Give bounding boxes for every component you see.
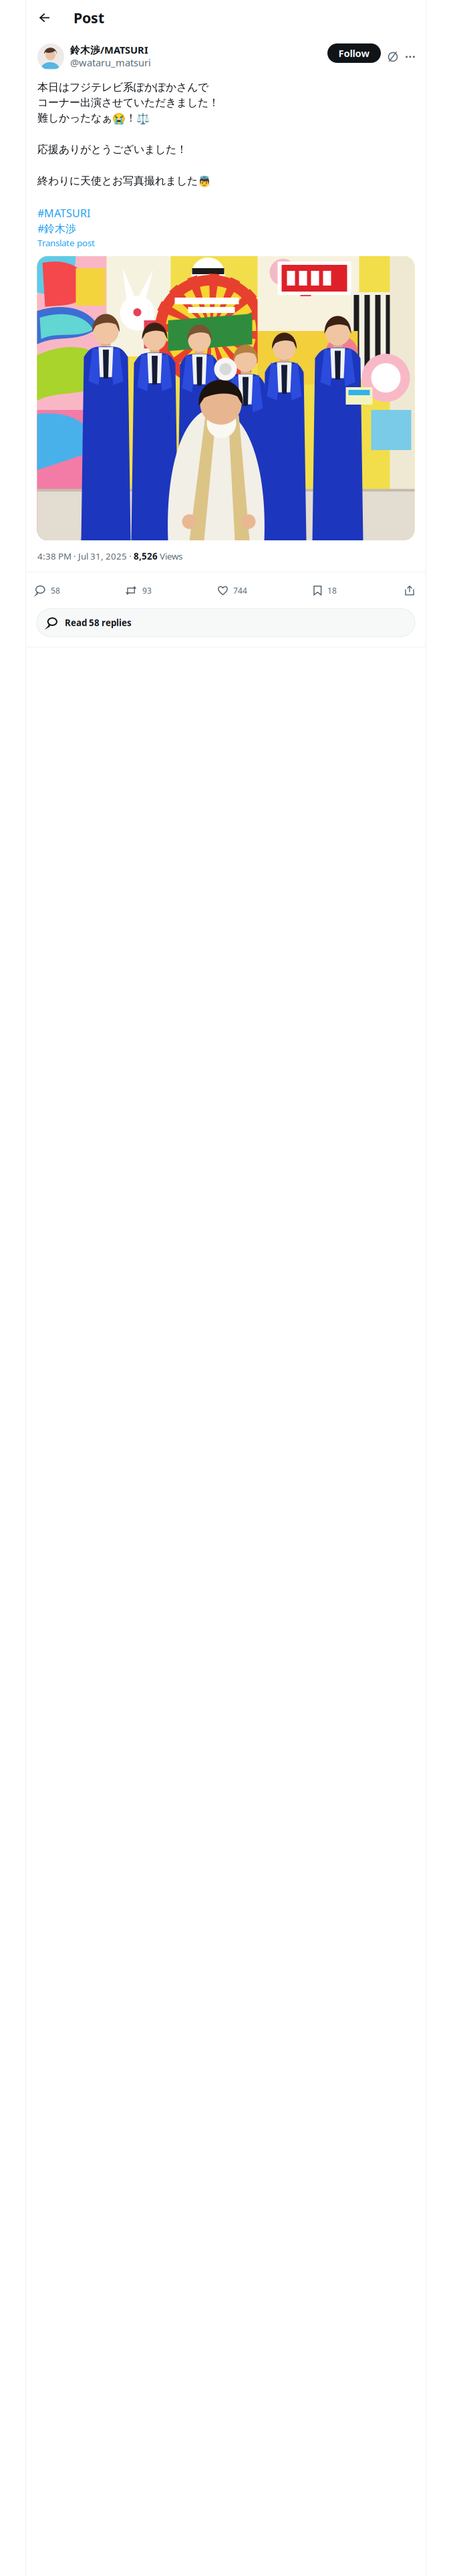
staticText: コーナー出演させていただきました！ [37,96,219,109]
button[interactable]: Translate post [37,236,95,249]
staticText: 終わりに天使とお写真撮れました👼 [37,174,211,188]
staticText: 58 [51,585,60,596]
button[interactable]: Share [400,579,419,602]
staticText: 8,526 [134,550,158,562]
button[interactable]: #MATSURI [37,205,90,221]
staticText: Follow [338,47,370,60]
staticText: Views [158,550,182,562]
button[interactable]: Repost [124,579,154,602]
staticText: Post [73,8,104,27]
button[interactable]: More [403,47,418,67]
button[interactable]: Back [33,6,56,29]
staticText: 744 [233,585,247,596]
staticText: 応援ありがとうございました！ [37,143,187,156]
staticText: 4:38 PM · Jul 31, 2025 · [37,550,134,562]
button[interactable]: Bookmark [311,579,339,602]
staticText: 鈴木渉/MATSURI [70,43,148,56]
button[interactable]: Reply [33,579,63,602]
button[interactable]: Follow [327,43,381,70]
staticText: 18 [327,585,337,596]
staticText: @wataru_matsuri [70,56,151,69]
staticText: #鈴木渉 [37,221,76,235]
staticText: Read 58 replies [65,617,132,628]
staticText: 本日はフジテレビ系ぽかぽかさんで [37,81,208,94]
staticText: #MATSURI [37,206,90,220]
button[interactable]: Like [215,579,250,602]
staticText: Translate post [37,237,95,249]
staticText: 93 [142,585,152,596]
button[interactable]: #鈴木渉 [37,221,76,236]
button[interactable]: Grok actions [384,47,402,67]
button[interactable]: Read 58 replies [37,609,415,637]
staticText: 難しかったなぁ😭！⚖️ [37,111,150,125]
